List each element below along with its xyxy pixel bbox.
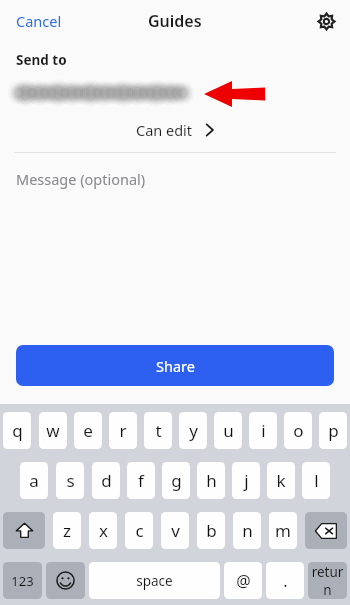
staticText: q xyxy=(12,419,23,442)
staticText: r xyxy=(119,419,127,442)
button[interactable]: p xyxy=(319,412,347,449)
button[interactable]: f xyxy=(127,462,155,499)
staticText: z xyxy=(63,519,71,542)
staticText: a xyxy=(29,469,39,492)
button[interactable] xyxy=(46,562,85,599)
button[interactable]: x xyxy=(89,512,117,549)
staticText: d xyxy=(101,469,112,492)
staticText: b xyxy=(206,519,217,542)
staticText: s xyxy=(66,469,75,492)
staticText: n xyxy=(242,519,253,542)
staticText: u xyxy=(223,419,234,442)
button[interactable]: Message (optional) xyxy=(0,169,350,189)
button[interactable]: . xyxy=(266,562,304,599)
button[interactable]: i xyxy=(249,412,277,449)
staticText: j xyxy=(244,469,249,492)
button[interactable]: Share xyxy=(16,345,334,386)
button[interactable]: g xyxy=(162,462,190,499)
button[interactable]: z xyxy=(53,512,81,549)
staticText: Can edit xyxy=(136,120,193,140)
button[interactable]: o xyxy=(284,412,312,449)
staticText: space xyxy=(136,572,173,590)
staticText: p xyxy=(328,419,339,442)
button[interactable]: n xyxy=(233,512,261,549)
button[interactable]: l xyxy=(302,462,330,499)
staticText: y xyxy=(189,419,198,442)
staticText: Cancel xyxy=(16,11,62,31)
button[interactable]: Cancel xyxy=(8,7,70,35)
staticText: e xyxy=(83,419,93,442)
staticText: Message (optional) xyxy=(16,169,146,189)
button[interactable]: a xyxy=(20,462,48,499)
staticText: o xyxy=(293,419,304,442)
button[interactable]: Can edit xyxy=(0,116,350,144)
staticText: v xyxy=(171,519,180,542)
staticText: f xyxy=(138,469,144,492)
button[interactable]: y xyxy=(179,412,207,449)
staticText: 123 xyxy=(11,572,34,590)
staticText: i xyxy=(261,419,266,442)
staticText: Share xyxy=(156,356,195,376)
button[interactable]: q xyxy=(3,412,31,449)
button[interactable]: j xyxy=(232,462,260,499)
button[interactable]: Settings xyxy=(312,7,340,35)
button[interactable]: d xyxy=(92,462,120,499)
button[interactable]: return xyxy=(308,562,347,599)
button[interactable]: w xyxy=(39,412,67,449)
staticText: return xyxy=(308,563,347,599)
staticText: m xyxy=(275,519,291,542)
button[interactable]: h xyxy=(197,462,225,499)
staticText: w xyxy=(46,419,60,442)
button[interactable]: r xyxy=(109,412,137,449)
button[interactable]: t xyxy=(144,412,172,449)
button[interactable]: u xyxy=(214,412,242,449)
staticText: Guides xyxy=(148,10,202,32)
button[interactable]: @ xyxy=(224,562,262,599)
button[interactable] xyxy=(3,512,45,549)
button[interactable]: k xyxy=(267,462,295,499)
staticText: @ xyxy=(236,570,251,592)
staticText: h xyxy=(206,469,217,492)
staticText: l xyxy=(314,469,319,492)
staticText: . xyxy=(283,570,288,592)
button[interactable]: s xyxy=(56,462,84,499)
staticText: g xyxy=(171,469,182,492)
button[interactable]: space xyxy=(89,562,220,599)
staticText: c xyxy=(135,519,144,542)
staticText: t xyxy=(155,419,162,442)
button[interactable]: m xyxy=(269,512,297,549)
button[interactable] xyxy=(305,512,347,549)
button[interactable]: b xyxy=(197,512,225,549)
button[interactable]: 123 xyxy=(3,562,42,599)
button[interactable]: e xyxy=(74,412,102,449)
button[interactable]: c xyxy=(125,512,153,549)
staticText: x xyxy=(99,519,108,542)
staticText: Send to xyxy=(16,51,67,69)
staticText: k xyxy=(276,469,286,492)
button[interactable]: v xyxy=(161,512,189,549)
